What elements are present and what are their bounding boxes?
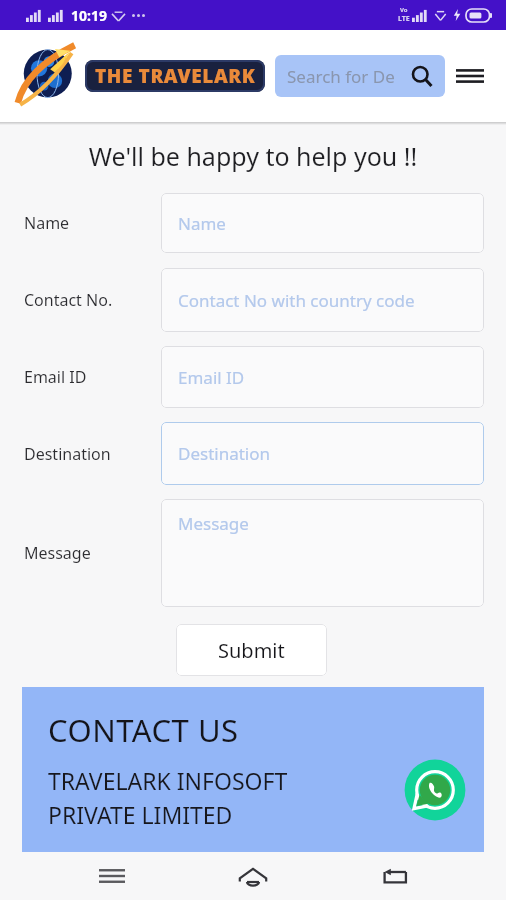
staticText: Vo <box>400 6 408 14</box>
staticText: CONTACT US <box>48 709 239 751</box>
button[interactable]: THE TRAVELARK <box>18 46 265 106</box>
staticText: TRAVELARK INFOSOFT <box>48 765 288 796</box>
button[interactable]: Back <box>365 854 425 898</box>
staticText: PRIVATE LIMITED <box>48 799 233 830</box>
button[interactable]: Name <box>0 193 506 253</box>
staticText: Name <box>178 212 226 235</box>
button[interactable]: CONTACT US <box>22 687 484 852</box>
staticText: Message <box>178 512 249 535</box>
staticText: We'll be happy to help you !! <box>0 139 506 173</box>
staticText: Submit <box>218 637 285 664</box>
staticText: Name <box>24 212 70 234</box>
staticText: 10:19 <box>71 6 107 25</box>
staticText: Message <box>24 542 91 564</box>
button[interactable]: Email ID <box>0 346 506 408</box>
button[interactable]: Search for De <box>275 55 445 97</box>
staticText: Search for De <box>287 65 395 88</box>
button[interactable]: Home <box>223 854 283 898</box>
staticText: Destination <box>178 442 271 465</box>
button[interactable]: Submit <box>176 624 327 676</box>
staticText: Email ID <box>24 366 87 388</box>
button[interactable]: Menu <box>448 54 492 98</box>
button[interactable]: Chat on WhatsApp <box>404 759 466 821</box>
staticText: Email ID <box>178 366 245 389</box>
staticText: THE TRAVELARK <box>95 63 256 89</box>
button[interactable]: Recent apps <box>82 854 142 898</box>
staticText: Contact No. <box>24 289 113 311</box>
button[interactable]: Contact No. <box>0 268 506 332</box>
staticText: LTE <box>398 14 410 24</box>
button[interactable]: Destination <box>0 422 506 485</box>
staticText: Destination <box>24 443 111 465</box>
button[interactable]: Message <box>0 499 506 607</box>
staticText: Contact No with country code <box>178 289 415 312</box>
